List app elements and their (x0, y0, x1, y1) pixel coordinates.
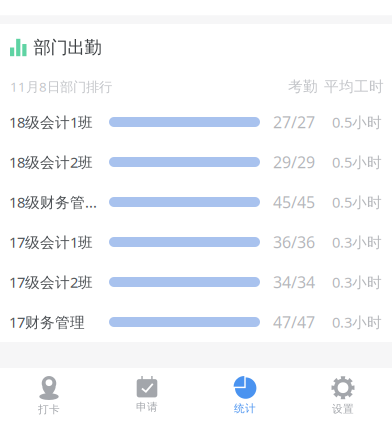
staticText: 47/47 (273, 311, 315, 333)
staticText: 0.5小时 (332, 152, 382, 172)
staticText: 29/29 (273, 151, 315, 173)
button[interactable]: 17级会计2班 (0, 262, 392, 302)
staticText: 18级会计1班 (9, 112, 93, 132)
button[interactable]: 17级会计1班 (0, 222, 392, 262)
staticText: 0.5小时 (332, 112, 382, 132)
button[interactable]: 打卡 (0, 368, 98, 436)
staticText: 申请 (136, 400, 158, 413)
staticText: 平均工时 (324, 77, 384, 95)
staticText: 18级财务管... (9, 192, 97, 212)
staticText: 考勤 (288, 77, 318, 95)
button[interactable]: 统计 (196, 368, 294, 436)
staticText: 17级会计2班 (9, 272, 93, 292)
button[interactable]: 18级财务管... (0, 182, 392, 222)
staticText: 部门出勤 (33, 37, 101, 58)
button[interactable]: 17财务管理 (0, 302, 392, 342)
staticText: 34/34 (273, 271, 315, 293)
staticText: 18级会计2班 (9, 152, 93, 172)
staticText: 0.3小时 (332, 232, 382, 252)
staticText: 45/45 (273, 191, 315, 213)
staticText: 设置 (332, 402, 354, 415)
staticText: 17级会计1班 (9, 232, 93, 252)
staticText: 36/36 (273, 231, 315, 253)
staticText: 0.3小时 (332, 272, 382, 292)
button[interactable]: 18级会计1班 (0, 102, 392, 142)
staticText: 0.5小时 (332, 192, 382, 212)
button[interactable]: 申请 (98, 368, 196, 436)
staticText: 11月8日部门排行 (10, 78, 112, 95)
staticText: 27/27 (273, 111, 315, 133)
staticText: 统计 (234, 402, 256, 415)
button[interactable]: 设置 (294, 368, 392, 436)
staticText: 0.3小时 (332, 312, 382, 332)
staticText: 打卡 (38, 403, 60, 416)
staticText: 17财务管理 (9, 312, 85, 332)
button[interactable]: 18级会计2班 (0, 142, 392, 182)
